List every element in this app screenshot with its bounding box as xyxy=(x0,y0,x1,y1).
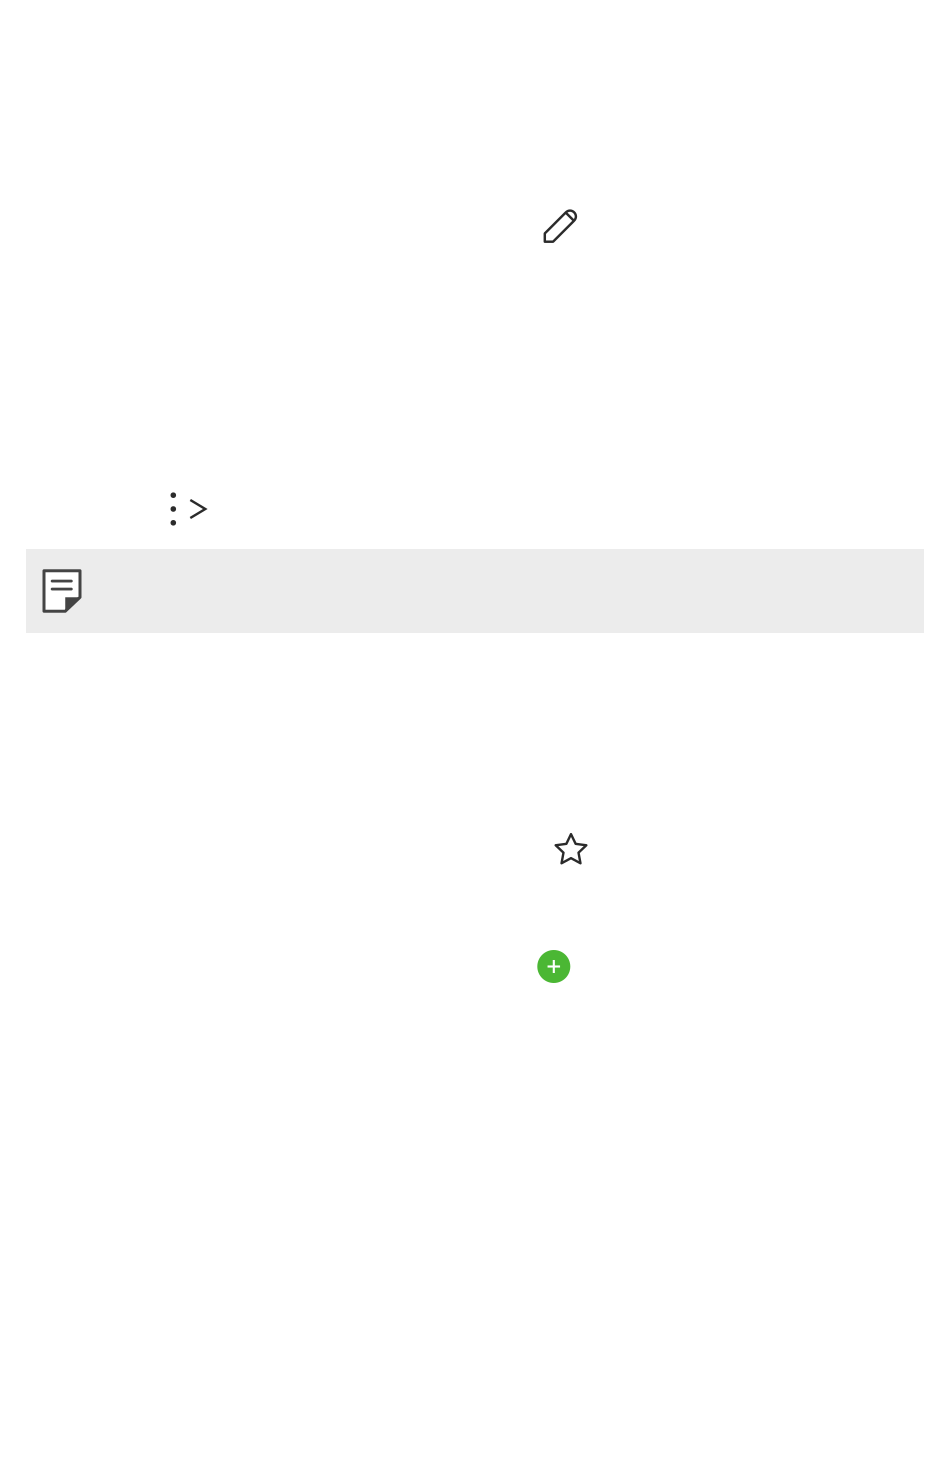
button[interactable]: Favourite xyxy=(555,833,587,864)
button[interactable]: Add xyxy=(537,950,570,983)
button[interactable]: Show all xyxy=(190,500,205,518)
button[interactable]: More options xyxy=(170,492,176,525)
button[interactable]: Compose xyxy=(543,207,579,243)
button[interactable]: Note xyxy=(26,549,924,633)
